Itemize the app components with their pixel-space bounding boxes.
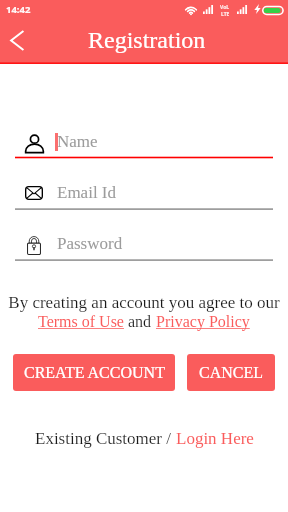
staticText: Name [57, 132, 98, 151]
button[interactable]: CANCEL [187, 354, 275, 391]
button[interactable]: Login Here [176, 429, 254, 448]
button[interactable]: Back [1, 24, 33, 56]
button[interactable]: Privacy Policy [156, 313, 250, 331]
staticText: By creating an account you agree to our [0, 293, 288, 312]
staticText: VoL [220, 4, 230, 11]
staticText: and [124, 313, 156, 331]
staticText: Password [57, 234, 123, 253]
staticText: Existing Customer / [35, 429, 176, 448]
button[interactable]: Terms of Use [38, 313, 124, 331]
staticText: CANCEL [199, 364, 263, 382]
staticText: Email Id [57, 183, 117, 202]
staticText: Registration [88, 27, 206, 54]
staticText: LTE [221, 11, 230, 18]
button[interactable]: CREATE ACCOUNT [13, 354, 175, 391]
staticText: 14:42 [6, 3, 31, 16]
staticText: CREATE ACCOUNT [24, 364, 165, 382]
